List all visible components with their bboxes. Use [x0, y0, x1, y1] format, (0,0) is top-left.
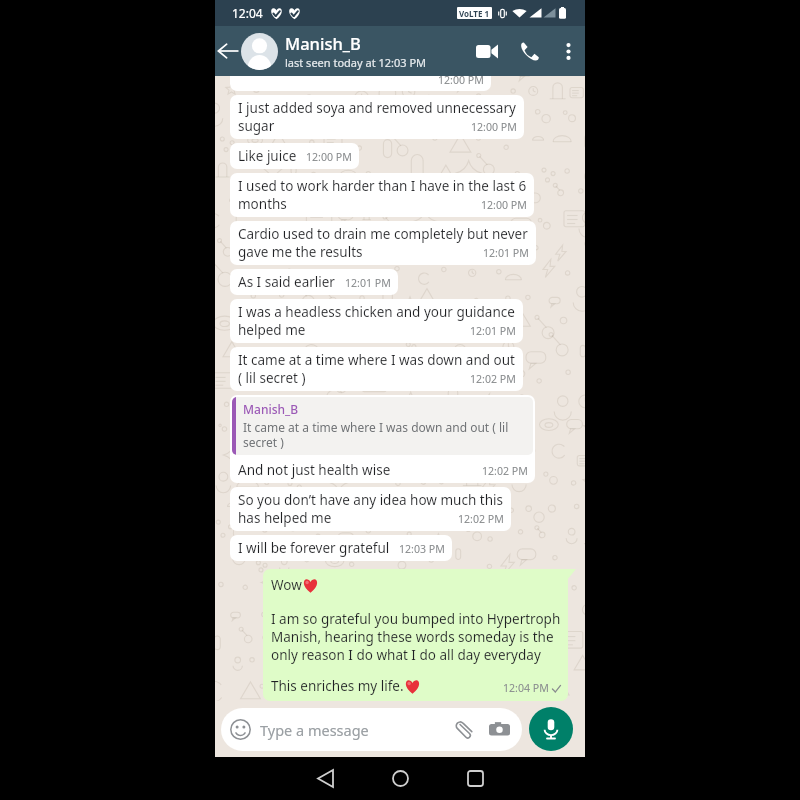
- button[interactable]: I just added soya and removed unnecessar…: [230, 95, 524, 139]
- staticText: 12:02 PM: [470, 372, 516, 386]
- staticText: I will be forever grateful: [238, 539, 390, 557]
- staticText: Cardio used to drain me completely but n…: [238, 225, 529, 261]
- button[interactable]: Home: [363, 757, 438, 800]
- button[interactable]: Manish_B: [230, 395, 535, 483]
- staticText: So you don’t have any idea how much this…: [238, 491, 504, 527]
- button[interactable]: Type a message: [221, 708, 522, 751]
- staticText: 12:00 PM: [306, 150, 352, 164]
- button[interactable]: Video call: [465, 26, 508, 76]
- staticText: VoLTE 1: [459, 8, 490, 19]
- staticText: 12:00 PM: [481, 198, 527, 212]
- staticText: Like juice: [238, 147, 297, 165]
- staticText: 12:01 PM: [470, 324, 516, 338]
- button[interactable]: Wow: [263, 569, 568, 701]
- button[interactable]: More options: [551, 26, 585, 76]
- staticText: 12:00 PM: [438, 76, 484, 87]
- staticText: 12:00 PM: [471, 120, 517, 134]
- button[interactable]: Like juice: [230, 143, 359, 169]
- button[interactable]: Cardio used to drain me completely but n…: [230, 221, 536, 265]
- staticText: It came at a time where I was down and o…: [238, 351, 516, 387]
- staticText: last seen today at 12:03 PM: [285, 55, 427, 70]
- staticText: 12:02 PM: [458, 512, 504, 526]
- staticText: 12:03 PM: [399, 542, 445, 556]
- button[interactable]: Voice call: [508, 26, 551, 76]
- button[interactable]: It came at a time where I was down and o…: [230, 347, 523, 391]
- staticText: 12:01 PM: [345, 276, 391, 290]
- button[interactable]: I will be forever grateful: [230, 535, 452, 561]
- staticText: Wow: [271, 576, 302, 594]
- staticText: 12:02 PM: [482, 464, 528, 478]
- button[interactable]: So you don’t have any idea how much this…: [230, 487, 511, 531]
- staticText: Type a message: [260, 720, 455, 740]
- staticText: 12:01 PM: [483, 246, 529, 260]
- button[interactable]: Back: [215, 26, 241, 76]
- staticText: 12:04: [232, 5, 263, 21]
- staticText: As I said earlier: [238, 273, 335, 291]
- button[interactable]: I used to work harder than I have in the…: [230, 173, 534, 217]
- button[interactable]: I was a headless chicken and your guidan…: [230, 299, 523, 343]
- staticText: And not just health wise: [238, 461, 391, 479]
- staticText: It came at a time where I was down and o…: [243, 419, 525, 450]
- staticText: This enriches my life.: [271, 677, 404, 695]
- button[interactable]: Record voice message: [529, 707, 573, 751]
- staticText: I am so grateful you bumped into Hypertr…: [271, 610, 561, 664]
- button[interactable]: As I said earlier: [230, 269, 398, 295]
- staticText: Manish_B: [243, 401, 299, 417]
- staticText: I was a headless chicken and your guidan…: [238, 303, 516, 339]
- staticText: I used to work harder than I have in the…: [238, 177, 527, 213]
- button[interactable]: Back: [288, 757, 363, 800]
- staticText: 12:04 PM: [503, 681, 549, 695]
- staticText: Manish_B: [285, 32, 361, 54]
- button[interactable]: I have not changed my lifestyle one bit: [230, 76, 491, 91]
- button[interactable]: Recent apps: [438, 757, 513, 800]
- staticText: I just added soya and removed unnecessar…: [238, 99, 517, 135]
